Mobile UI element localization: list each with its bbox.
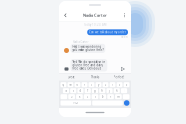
staticText: ?12 <box>73 101 78 105</box>
staticText: e <box>76 83 78 86</box>
button[interactable]: Back <box>62 11 68 19</box>
button[interactable]: d <box>77 88 84 93</box>
staticText: z <box>71 95 72 98</box>
staticText: Can we talk about my order <box>89 30 126 34</box>
button[interactable]: z <box>68 94 75 99</box>
button[interactable]: i <box>110 82 115 87</box>
button[interactable]: b <box>99 94 106 99</box>
staticText: Seen <box>121 35 128 39</box>
button[interactable]: v <box>92 94 98 99</box>
staticText: d <box>79 89 81 92</box>
staticText: f <box>87 89 88 92</box>
button[interactable]: e <box>74 82 80 87</box>
button[interactable]: j <box>106 88 113 93</box>
staticText: Nadia Carter <box>72 40 88 44</box>
button[interactable]: w <box>67 82 73 87</box>
button[interactable]: f <box>85 88 91 93</box>
button[interactable]: Attach photo <box>64 66 69 71</box>
button[interactable]: q <box>60 82 66 87</box>
button[interactable]: u <box>103 82 108 87</box>
button[interactable]: s <box>70 88 76 93</box>
staticText: k <box>116 89 117 92</box>
staticText: y <box>98 83 99 86</box>
button[interactable]: Great <box>59 75 83 79</box>
staticText: i <box>112 83 113 86</box>
staticText: j <box>109 89 110 92</box>
staticText: Nadia Carter <box>83 13 107 18</box>
staticText: you make gluten free? <box>72 48 103 52</box>
staticText: Perfect! <box>113 75 124 79</box>
staticText: s <box>73 89 74 92</box>
staticText: v <box>94 95 95 98</box>
staticText: m <box>117 95 119 98</box>
staticText: b <box>102 95 104 98</box>
staticText: p <box>125 83 127 86</box>
staticText: free cakes. Delicious! <box>72 67 101 70</box>
staticText: Today 10:24 AM <box>84 23 106 26</box>
staticText: x <box>79 95 80 98</box>
staticText: u <box>104 83 106 86</box>
staticText: Great <box>67 75 74 79</box>
button[interactable]: o <box>117 82 122 87</box>
button[interactable]: h <box>99 88 105 93</box>
button[interactable]: m <box>115 94 122 99</box>
button[interactable]: n <box>107 94 114 99</box>
staticText: r <box>84 83 85 86</box>
button[interactable]: x <box>76 94 83 99</box>
staticText: h <box>101 89 103 92</box>
staticText: o <box>118 83 120 86</box>
staticText: g <box>94 89 96 92</box>
button[interactable] <box>123 94 129 99</box>
button[interactable]: p <box>124 82 129 87</box>
button[interactable]: r <box>81 82 87 87</box>
button[interactable]: c <box>84 94 91 99</box>
button[interactable] <box>60 94 67 99</box>
button[interactable]: t <box>88 82 94 87</box>
staticText: Thanks <box>91 75 99 79</box>
staticText: Yes! We do specialise in <box>72 60 105 64</box>
button[interactable]: Thanks <box>83 75 107 79</box>
staticText: n <box>110 95 112 98</box>
button[interactable]: g <box>92 88 98 93</box>
button[interactable]: Space <box>92 100 123 105</box>
button[interactable]: Perfect! <box>107 75 131 79</box>
staticText: Hey! I was wondering <box>72 45 101 48</box>
button[interactable]: Return <box>124 100 129 106</box>
staticText: gluten free and dairy <box>72 63 102 67</box>
button[interactable]: a <box>63 88 69 93</box>
staticText: t <box>91 83 92 86</box>
button[interactable]: ?12 <box>60 100 91 105</box>
staticText: w <box>69 83 71 86</box>
button[interactable]: k <box>114 88 120 93</box>
button[interactable]: y <box>95 82 101 87</box>
staticText: q <box>62 83 64 86</box>
button[interactable]: Send <box>120 66 126 71</box>
staticText: c <box>87 95 88 98</box>
button[interactable]: More options <box>121 11 127 19</box>
